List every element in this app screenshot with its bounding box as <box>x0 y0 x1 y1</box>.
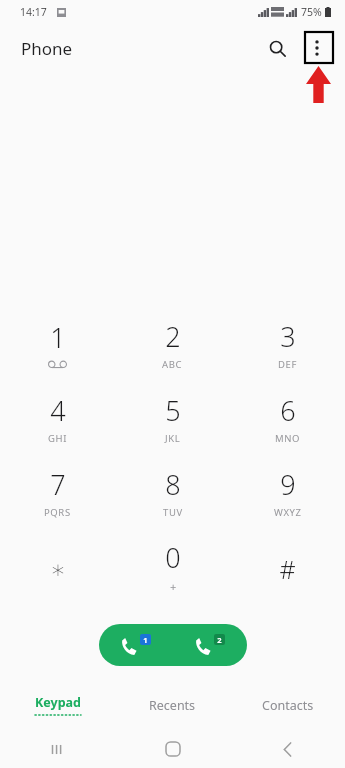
staticText: MNO <box>275 432 301 445</box>
staticText: ∗ <box>50 555 66 584</box>
staticText: WXYZ <box>274 506 302 519</box>
staticText: 5 <box>165 392 181 429</box>
button[interactable]: Home <box>115 730 230 768</box>
button[interactable]: Call with SIM 1 <box>99 624 173 666</box>
staticText: Phone <box>21 37 73 60</box>
staticText: Keypad <box>35 694 81 711</box>
button[interactable]: Recents <box>115 690 230 720</box>
button[interactable]: ∗ <box>0 532 115 606</box>
button[interactable]: 8 <box>115 458 230 532</box>
button[interactable]: Back <box>230 730 345 768</box>
staticText: + <box>170 579 177 594</box>
staticText: # <box>279 552 296 586</box>
staticText: 4 <box>50 392 66 429</box>
staticText: 0 <box>165 539 181 576</box>
button[interactable]: 3 <box>230 310 345 384</box>
staticText: GHI <box>48 432 67 445</box>
staticText: ABC <box>162 358 183 371</box>
staticText: 2 <box>217 635 222 645</box>
button[interactable]: Search <box>257 28 297 68</box>
staticText: 8 <box>165 466 181 503</box>
staticText: 6 <box>280 392 296 429</box>
staticText: 75% <box>301 5 322 19</box>
button[interactable]: 7 <box>0 458 115 532</box>
staticText: DEF <box>278 358 297 371</box>
staticText: Contacts <box>262 697 314 714</box>
button[interactable]: Call with SIM 2 <box>173 624 247 666</box>
staticText: 1 <box>143 635 148 645</box>
button[interactable]: 5 <box>115 384 230 458</box>
staticText: 3 <box>280 318 296 355</box>
staticText: Recents <box>149 697 196 714</box>
staticText: 1 <box>50 319 66 356</box>
staticText: TUV <box>163 506 183 519</box>
staticText: 14:17 <box>20 5 47 19</box>
button[interactable]: 6 <box>230 384 345 458</box>
staticText: 7 <box>50 466 66 503</box>
staticText: JKL <box>165 432 181 445</box>
button[interactable]: 9 <box>230 458 345 532</box>
staticText: 9 <box>280 466 296 503</box>
button[interactable]: Recent apps <box>0 730 115 768</box>
button[interactable]: 0 <box>115 532 230 606</box>
button[interactable]: Contacts <box>230 690 345 720</box>
button[interactable]: # <box>230 532 345 606</box>
button[interactable]: Keypad <box>0 690 115 720</box>
button[interactable]: 2 <box>115 310 230 384</box>
button[interactable]: 1 <box>0 310 115 384</box>
button[interactable]: More options <box>297 28 337 68</box>
staticText: PQRS <box>44 506 71 519</box>
staticText: 2 <box>165 318 181 355</box>
button[interactable]: 4 <box>0 384 115 458</box>
